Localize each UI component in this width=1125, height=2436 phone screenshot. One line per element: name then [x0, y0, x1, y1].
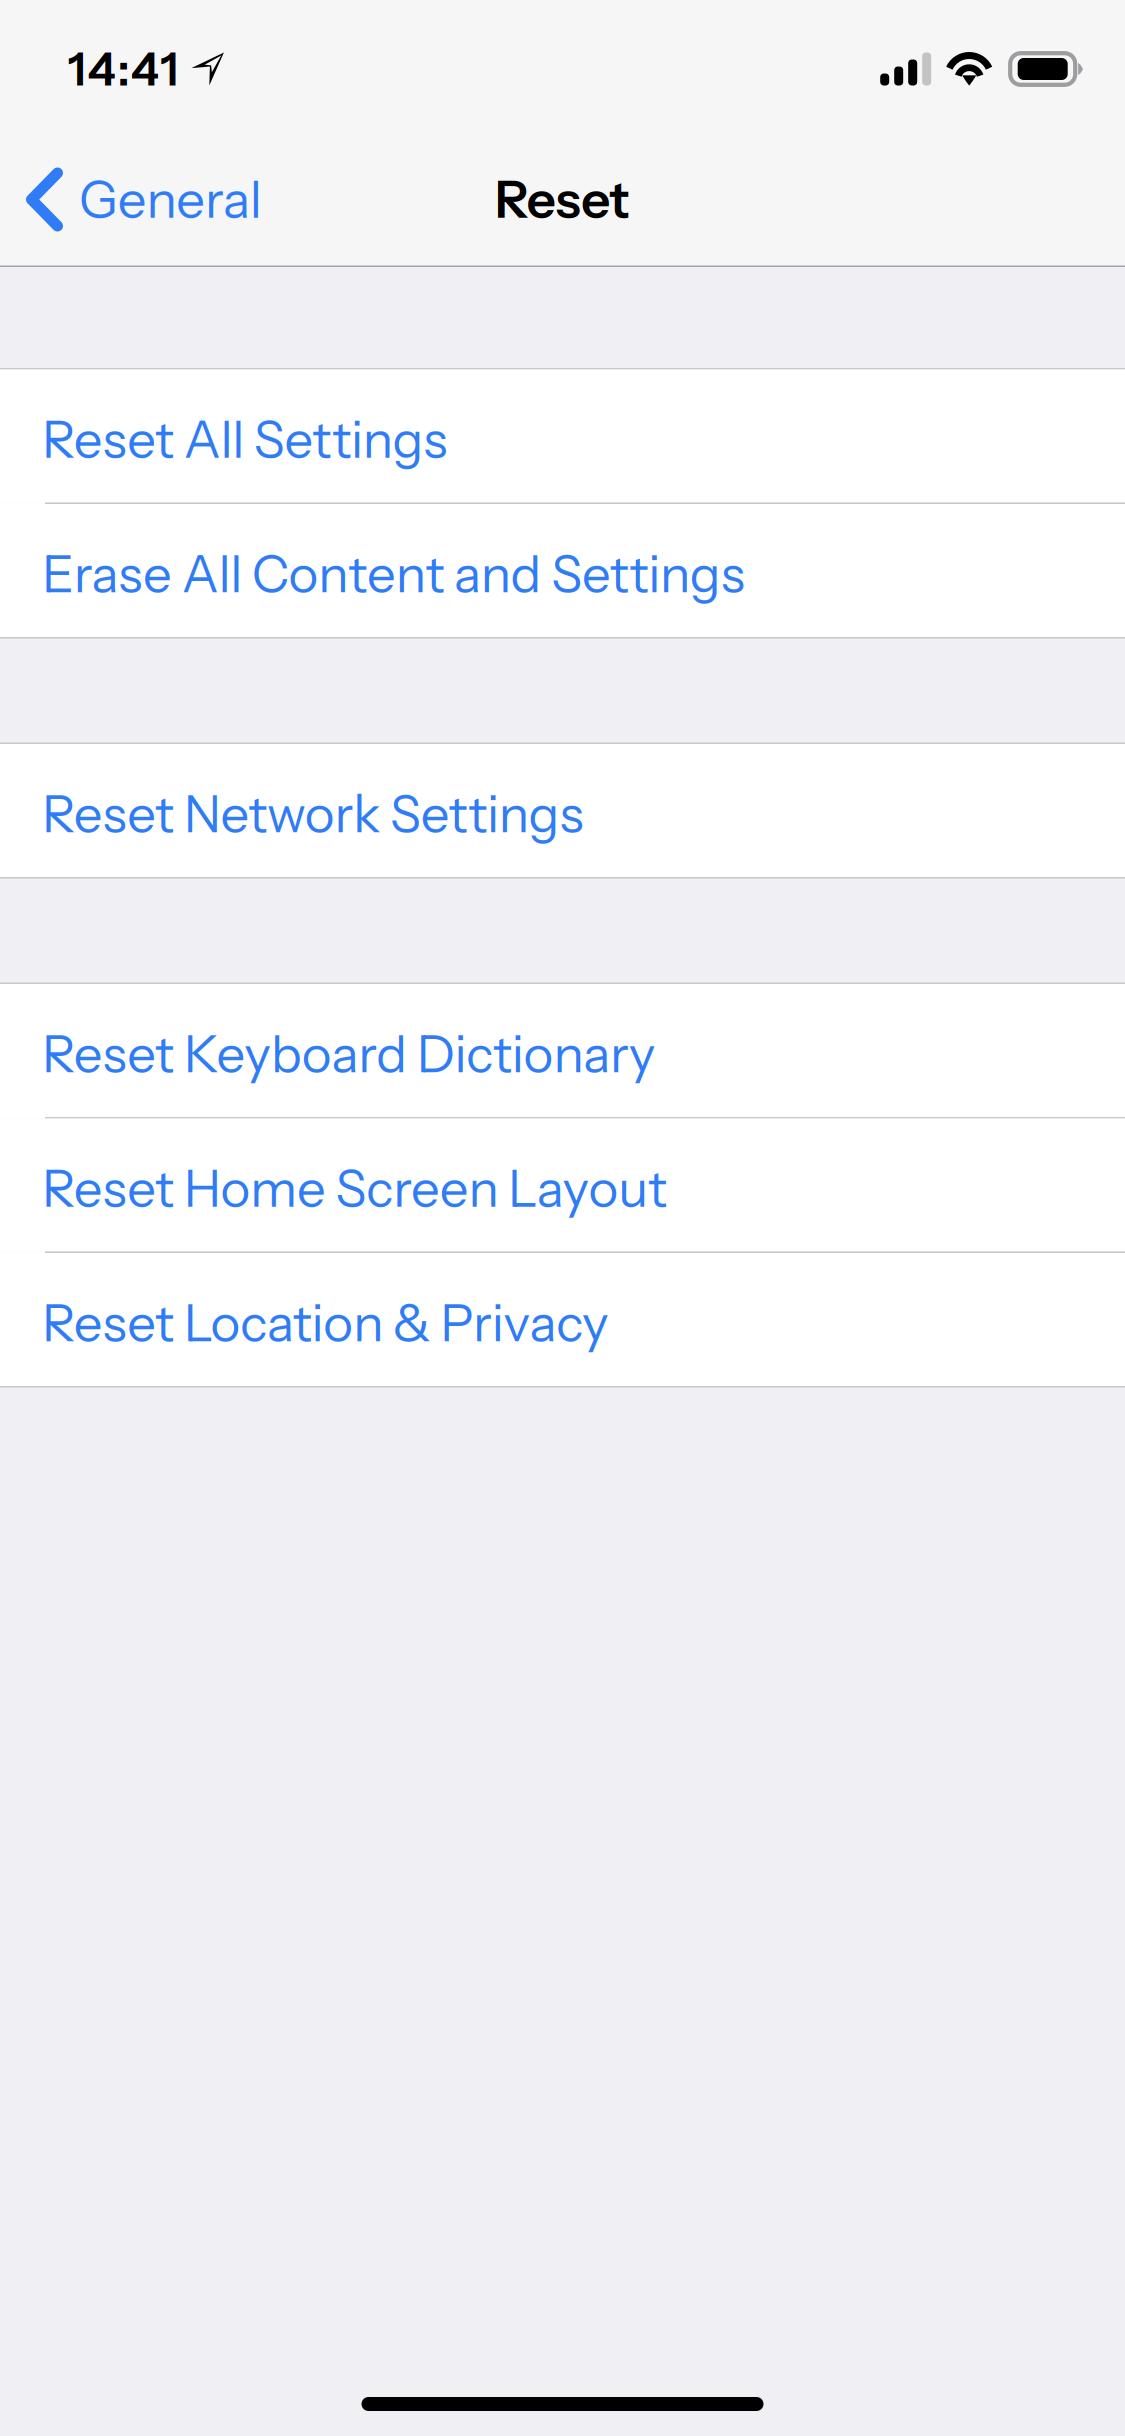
staticText: Erase All Content and Settings [42, 543, 745, 605]
button[interactable]: Reset Location & Privacy [0, 1253, 1125, 1386]
button[interactable]: Erase All Content and Settings [0, 504, 1125, 637]
button[interactable]: Reset Network Settings [0, 744, 1125, 877]
staticText: Reset Network Settings [42, 783, 583, 845]
button[interactable]: Reset All Settings [0, 369, 1125, 502]
staticText: Reset Keyboard Dictionary [42, 1023, 656, 1085]
staticText: Reset [495, 168, 630, 230]
staticText: Reset All Settings [42, 408, 447, 470]
button[interactable]: Back to General [0, 132, 302, 267]
button[interactable]: Reset Keyboard Dictionary [0, 984, 1125, 1117]
staticText: Reset Location & Privacy [42, 1292, 609, 1354]
button[interactable]: Reset Home Screen Layout [0, 1118, 1125, 1251]
staticText: General [79, 168, 262, 230]
staticText: Reset Home Screen Layout [42, 1157, 667, 1219]
staticText: 14:41 [68, 41, 178, 97]
